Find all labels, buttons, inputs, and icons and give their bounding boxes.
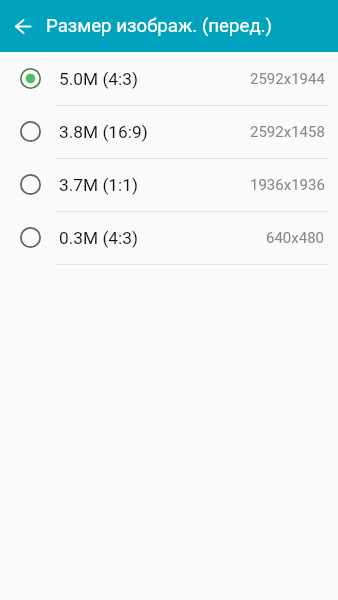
button[interactable]: 3.7M (1:1) <box>0 158 338 211</box>
staticText: 1936x1936 <box>250 176 325 194</box>
staticText: 2592x1944 <box>250 70 325 88</box>
button[interactable]: 3.8M (16:9) <box>0 105 338 158</box>
staticText: 3.7M (1:1) <box>59 175 138 195</box>
staticText: 5.0M (4:3) <box>59 69 138 89</box>
staticText: 2592x1458 <box>250 123 325 141</box>
button[interactable]: 5.0M (4:3) <box>0 52 338 105</box>
staticText: 0.3M (4:3) <box>59 228 138 248</box>
staticText: 3.8M (16:9) <box>59 122 148 142</box>
button[interactable]: 0.3M (4:3) <box>0 211 338 264</box>
staticText: Размер изображ. (перед.) <box>46 15 273 37</box>
button[interactable]: Back <box>3 6 43 46</box>
staticText: 640x480 <box>266 229 325 247</box>
